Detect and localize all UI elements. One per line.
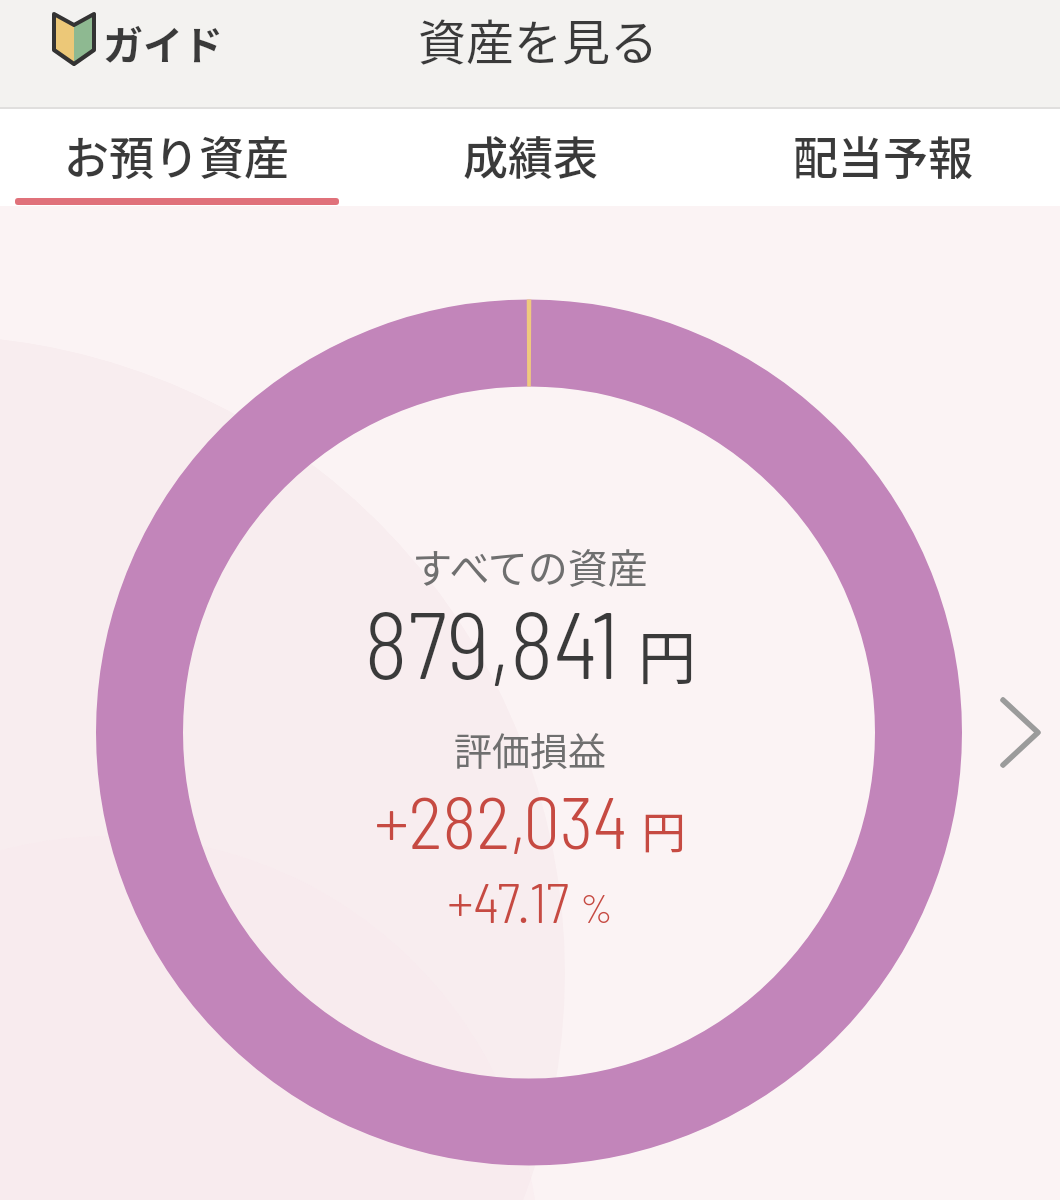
button[interactable]: 成績表	[354, 109, 707, 206]
staticText: 配当予報	[793, 123, 974, 188]
staticText: 資産を見る	[8, 4, 1060, 74]
staticText: 評価損益	[0, 721, 1060, 776]
staticText: お預り資産	[64, 123, 290, 188]
button[interactable]: すべての資産	[0, 206, 1060, 1200]
staticText: ガイド	[103, 14, 223, 72]
button[interactable]: 配当予報	[707, 109, 1060, 206]
staticText: 879,841 円	[0, 585, 1060, 698]
staticText: すべての資産	[0, 537, 1060, 595]
button[interactable]: ガイド	[54, 10, 223, 68]
staticText: 成績表	[463, 123, 599, 188]
button[interactable]: お預り資産	[0, 109, 354, 206]
staticText: +282,034 円	[0, 776, 1060, 864]
staticText: +47.17 %	[0, 868, 1060, 934]
